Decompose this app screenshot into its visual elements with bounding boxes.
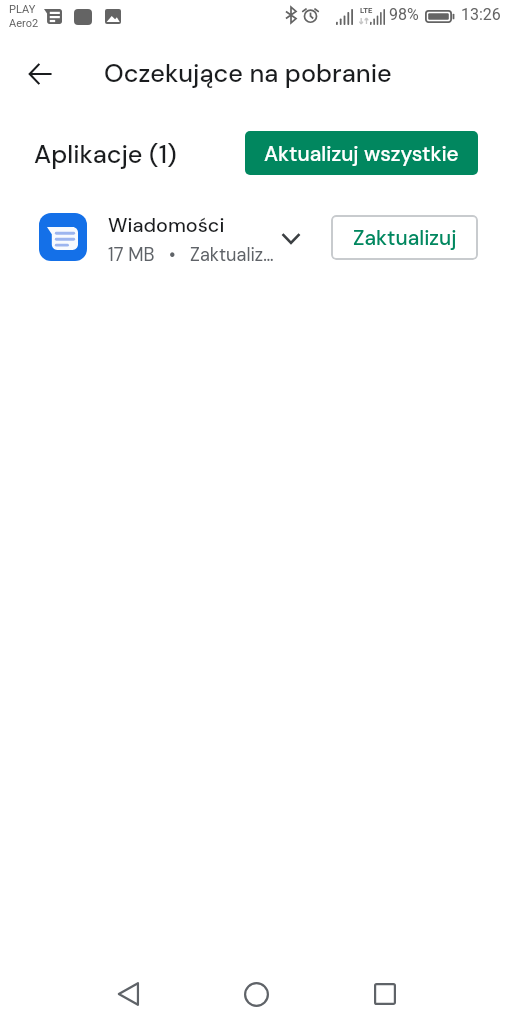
staticText: LTE bbox=[360, 6, 373, 15]
button[interactable]: Ekran główny bbox=[226, 964, 286, 1024]
button[interactable]: Zaktualizuj bbox=[331, 215, 478, 260]
staticText: Oczekujące na pobranie bbox=[104, 57, 392, 90]
staticText: PLAY bbox=[9, 3, 36, 16]
staticText: 98% bbox=[389, 5, 419, 24]
staticText: Aktualizuj wszystkie bbox=[264, 140, 459, 167]
staticText: Wiadomości bbox=[108, 212, 225, 238]
button[interactable]: Aktualizuj wszystkie bbox=[245, 131, 478, 175]
button[interactable]: Wstecz bbox=[16, 50, 64, 98]
staticText: 17 MB • Zaktualiz… bbox=[108, 243, 274, 267]
staticText: Zaktualizuj bbox=[353, 224, 457, 251]
staticText: Aplikacje (1) bbox=[34, 138, 177, 171]
button[interactable]: Rozwiń bbox=[274, 221, 308, 255]
button[interactable]: Wstecz bbox=[98, 964, 158, 1024]
staticText: 13:26 bbox=[461, 5, 501, 24]
button[interactable]: Ostatnie bbox=[355, 964, 415, 1024]
staticText: Aero2 bbox=[9, 17, 39, 30]
